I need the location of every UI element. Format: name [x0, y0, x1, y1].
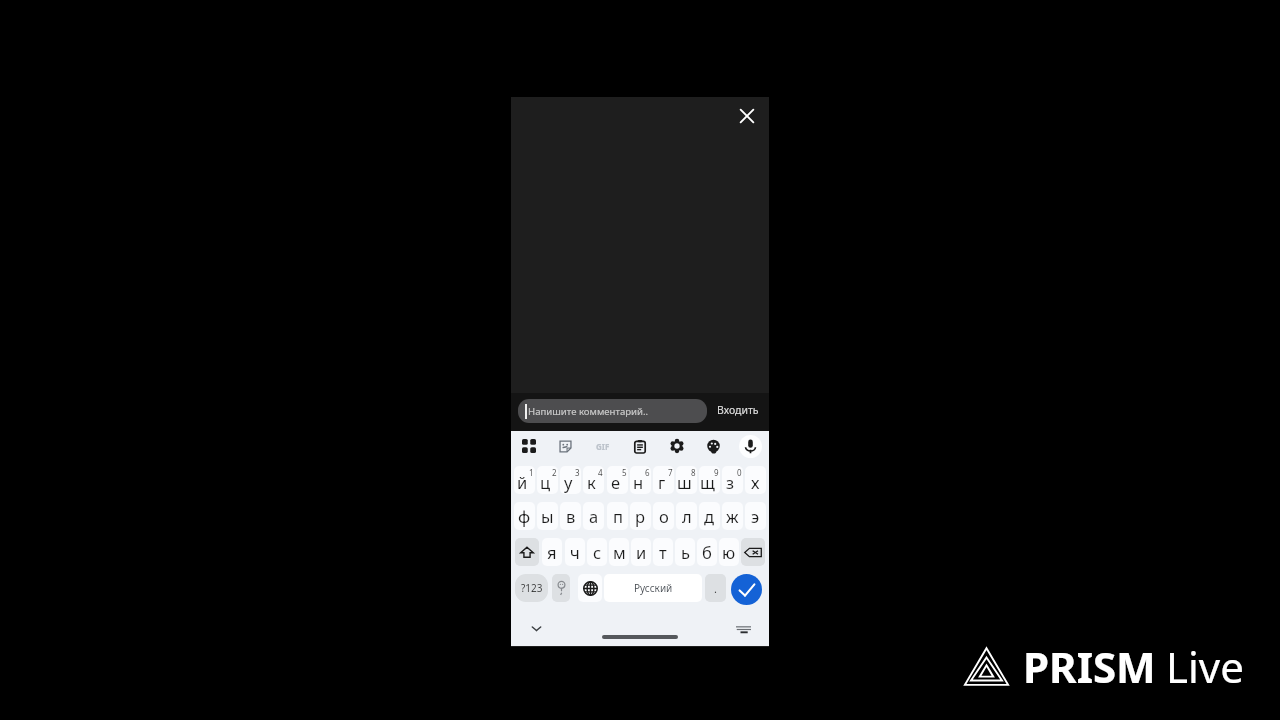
staticText: ?123	[521, 581, 543, 595]
button[interactable]: з	[722, 466, 743, 494]
button[interactable]: Period	[705, 574, 726, 602]
button[interactable]: Enter	[731, 574, 762, 605]
button[interactable]: Clipboard	[621, 431, 658, 461]
button[interactable]: ф	[514, 502, 535, 530]
button[interactable]: щ	[699, 466, 720, 494]
staticText: PRISM	[1023, 638, 1156, 695]
button[interactable]: к	[583, 466, 604, 494]
button[interactable]: Close	[735, 104, 759, 128]
staticText: з	[726, 471, 735, 493]
staticText: GIF	[596, 441, 610, 452]
button[interactable]: ц	[537, 466, 558, 494]
staticText: о	[659, 505, 669, 527]
button[interactable]: ь	[675, 538, 695, 566]
staticText: м	[613, 541, 626, 563]
staticText: н	[633, 471, 644, 493]
staticText: ю	[722, 541, 736, 563]
staticText: 9	[714, 467, 719, 478]
button[interactable]: л	[676, 502, 697, 530]
staticText: ы	[541, 505, 554, 527]
staticText: в	[566, 505, 576, 527]
staticText: Входить	[717, 403, 759, 417]
button[interactable]: Voice input	[732, 431, 769, 461]
staticText: 3	[575, 467, 580, 478]
button[interactable]: в	[560, 502, 581, 530]
button[interactable]: Входить	[712, 395, 764, 425]
button[interactable]: у	[560, 466, 581, 494]
staticText: и	[636, 541, 647, 563]
staticText: й	[517, 471, 528, 493]
staticText: т	[659, 541, 667, 563]
button[interactable]: е	[607, 466, 628, 494]
staticText: .	[714, 581, 717, 596]
button[interactable]: д	[699, 502, 720, 530]
staticText: Напишите комментарий..	[528, 405, 649, 418]
button[interactable]: Shift	[515, 538, 539, 566]
button[interactable]: й	[514, 466, 535, 494]
staticText: 6	[645, 467, 650, 478]
staticText: 0	[737, 467, 742, 478]
staticText: 2	[552, 467, 557, 478]
staticText: а	[589, 505, 599, 527]
button[interactable]: GIF	[584, 431, 621, 461]
staticText: 7	[668, 467, 673, 478]
button[interactable]: о	[653, 502, 674, 530]
staticText: р	[635, 505, 646, 527]
staticText: у	[564, 471, 573, 493]
staticText: х	[751, 471, 760, 493]
button[interactable]: э	[745, 502, 766, 530]
staticText: л	[682, 505, 692, 527]
button[interactable]: Space	[604, 574, 702, 602]
button[interactable]: р	[630, 502, 651, 530]
button[interactable]: ы	[537, 502, 558, 530]
button[interactable]: Themes	[695, 431, 732, 461]
staticText: п	[613, 505, 623, 527]
button[interactable]: п	[607, 502, 628, 530]
staticText: 1	[529, 467, 534, 478]
staticText: ш	[677, 471, 692, 493]
button[interactable]: х	[745, 466, 766, 494]
button[interactable]: Напишите комментарий..	[518, 399, 707, 423]
staticText: б	[702, 541, 712, 563]
button[interactable]: ш	[676, 466, 697, 494]
staticText: 8	[691, 467, 696, 478]
staticText: ч	[570, 541, 580, 563]
staticText: э	[751, 505, 760, 527]
button[interactable]: ю	[719, 538, 739, 566]
staticText: я	[547, 541, 557, 563]
staticText: 5	[622, 467, 627, 478]
button[interactable]: с	[587, 538, 607, 566]
staticText: ф	[518, 505, 531, 527]
staticText: ж	[726, 505, 739, 527]
button[interactable]: т	[653, 538, 673, 566]
staticText: г	[658, 471, 666, 493]
staticText: е	[611, 471, 621, 493]
button[interactable]: Apps	[511, 431, 547, 461]
button[interactable]: я	[542, 538, 562, 566]
button[interactable]: ж	[722, 502, 743, 530]
button[interactable]: ч	[565, 538, 585, 566]
button[interactable]: Emoji	[552, 574, 570, 602]
button[interactable]: Keyboard settings	[733, 619, 753, 639]
button[interactable]: и	[631, 538, 651, 566]
staticText: д	[704, 505, 715, 527]
staticText: ь	[681, 541, 690, 563]
button[interactable]: Stickers	[547, 431, 584, 461]
staticText: Live	[1166, 638, 1244, 695]
staticText: к	[587, 471, 596, 493]
button[interactable]: Change language	[578, 574, 602, 602]
button[interactable]: н	[630, 466, 651, 494]
button[interactable]: Settings	[658, 431, 695, 461]
button[interactable]: м	[609, 538, 629, 566]
staticText: с	[593, 541, 602, 563]
button[interactable]: г	[653, 466, 674, 494]
button[interactable]: б	[697, 538, 717, 566]
button[interactable]: Backspace	[741, 538, 765, 566]
staticText: Русский	[634, 581, 673, 595]
button[interactable]: Symbols	[515, 574, 548, 602]
button[interactable]: Hide keyboard	[526, 618, 546, 638]
button[interactable]: а	[583, 502, 604, 530]
staticText: ц	[540, 471, 551, 493]
staticText: 4	[598, 467, 603, 478]
staticText: щ	[700, 471, 715, 493]
